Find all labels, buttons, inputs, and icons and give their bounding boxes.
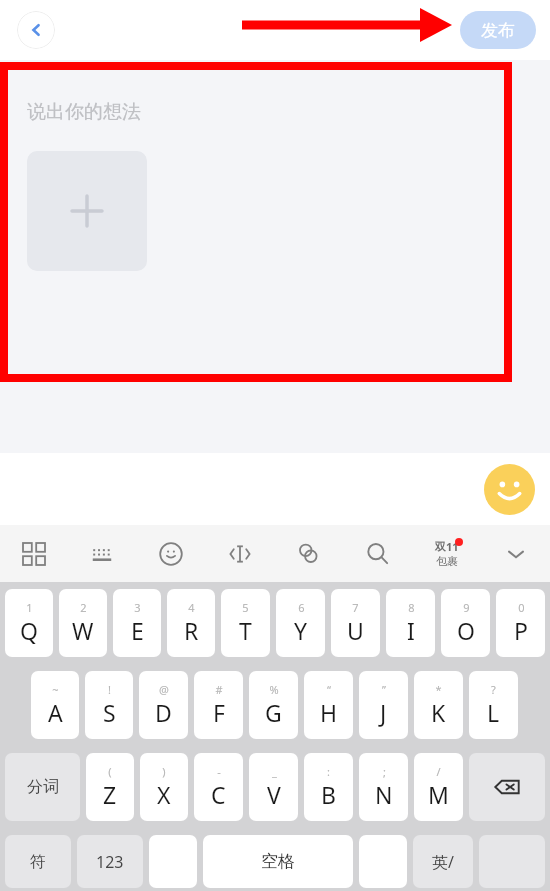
button[interactable]: : xyxy=(304,753,353,821)
button[interactable]: 0 xyxy=(496,589,545,657)
staticText: D xyxy=(155,697,172,728)
button[interactable]: Add photo xyxy=(27,151,147,271)
button[interactable]: ~ xyxy=(31,671,79,739)
staticText: M xyxy=(428,779,449,810)
staticText: 分词 xyxy=(27,777,59,797)
button[interactable]: Back xyxy=(17,11,55,49)
staticText: 1 xyxy=(26,600,33,615)
staticText: _ xyxy=(272,764,277,779)
staticText: ? xyxy=(491,682,496,697)
staticText: / xyxy=(436,764,441,779)
button[interactable]: * xyxy=(414,671,463,739)
staticText: X xyxy=(157,779,171,810)
staticText: T xyxy=(239,615,252,646)
staticText: 5 xyxy=(242,600,249,615)
staticText: 包裹 xyxy=(436,554,458,568)
button[interactable]: ? xyxy=(469,671,518,739)
staticText: L xyxy=(487,697,500,728)
button[interactable]: ! xyxy=(85,671,133,739)
staticText: P xyxy=(514,615,528,646)
staticText: 0 xyxy=(518,600,525,615)
staticText: I xyxy=(407,615,415,646)
staticText: G xyxy=(265,697,282,728)
button[interactable]: Apps xyxy=(0,525,68,582)
staticText: W xyxy=(72,615,94,646)
staticText: F xyxy=(213,697,225,728)
staticText: B xyxy=(321,779,336,810)
staticText: N xyxy=(375,779,393,810)
button[interactable]: 双11 xyxy=(412,525,481,582)
button[interactable]: ) xyxy=(140,753,188,821)
staticText: 符 xyxy=(30,852,46,872)
button[interactable]: ; xyxy=(359,753,408,821)
button[interactable]: Move cursor xyxy=(205,525,274,582)
button[interactable]: 9 xyxy=(441,589,490,657)
button[interactable]: 1 xyxy=(5,589,53,657)
staticText: 4 xyxy=(188,600,195,615)
button[interactable]: Attach xyxy=(274,525,343,582)
button[interactable]: Emoji xyxy=(484,464,535,515)
staticText: U xyxy=(347,615,364,646)
button[interactable]: 6 xyxy=(276,589,325,657)
button[interactable]: 符 xyxy=(5,835,71,888)
staticText: 3 xyxy=(134,600,141,615)
button[interactable]: # xyxy=(194,671,243,739)
staticText: Y xyxy=(294,615,308,646)
button[interactable]: @ xyxy=(139,671,188,739)
staticText: : xyxy=(327,764,330,779)
button[interactable]: ( xyxy=(86,753,134,821)
button[interactable]: 发布 xyxy=(460,11,536,49)
button[interactable]: _ xyxy=(249,753,298,821)
staticText: ; xyxy=(383,764,386,779)
staticText: 发布 xyxy=(481,20,515,41)
button[interactable]: % xyxy=(249,671,298,739)
staticText: 123 xyxy=(96,851,124,873)
button[interactable]: 3 xyxy=(113,589,161,657)
staticText: C xyxy=(211,779,226,810)
staticText: - xyxy=(217,764,221,779)
button[interactable]: 空格 xyxy=(203,835,353,888)
staticText: H xyxy=(320,697,338,728)
button[interactable]: Emoticons xyxy=(136,525,205,582)
button[interactable]: 英/ xyxy=(413,835,473,888)
staticText: ( xyxy=(108,764,112,779)
staticText: A xyxy=(48,697,63,728)
staticText: ! xyxy=(108,682,111,697)
button[interactable]: Keyboard xyxy=(68,525,136,582)
staticText: 英/ xyxy=(432,851,454,873)
staticText: Z xyxy=(103,779,117,810)
button[interactable]: 分词 xyxy=(5,753,80,821)
staticText: J xyxy=(380,697,387,728)
staticText: 6 xyxy=(298,600,305,615)
staticText: Q xyxy=(20,615,38,646)
staticText: @ xyxy=(159,682,169,697)
button[interactable]: Backspace xyxy=(469,753,545,821)
button[interactable]: Comma xyxy=(149,835,197,888)
button[interactable]: Period xyxy=(359,835,407,888)
button[interactable]: “ xyxy=(304,671,353,739)
button[interactable]: Search xyxy=(343,525,412,582)
staticText: E xyxy=(131,615,144,646)
button[interactable]: / xyxy=(414,753,463,821)
button[interactable]: ” xyxy=(359,671,408,739)
staticText: R xyxy=(184,615,199,646)
staticText: “ xyxy=(327,682,331,697)
staticText: ) xyxy=(162,764,166,779)
button[interactable]: 4 xyxy=(167,589,215,657)
staticText: 空格 xyxy=(261,851,295,872)
staticText: V xyxy=(267,779,281,810)
button[interactable]: Hide keyboard xyxy=(481,525,550,582)
button[interactable]: 7 xyxy=(331,589,380,657)
button[interactable]: 2 xyxy=(59,589,107,657)
staticText: * xyxy=(435,682,442,697)
button[interactable]: 5 xyxy=(221,589,270,657)
staticText: O xyxy=(457,615,475,646)
button[interactable]: 8 xyxy=(386,589,435,657)
staticText: 2 xyxy=(80,600,87,615)
button[interactable]: - xyxy=(194,753,243,821)
staticText: ~ xyxy=(52,682,59,697)
staticText: 7 xyxy=(352,600,359,615)
staticText: S xyxy=(103,697,116,728)
button[interactable]: 123 xyxy=(77,835,143,888)
